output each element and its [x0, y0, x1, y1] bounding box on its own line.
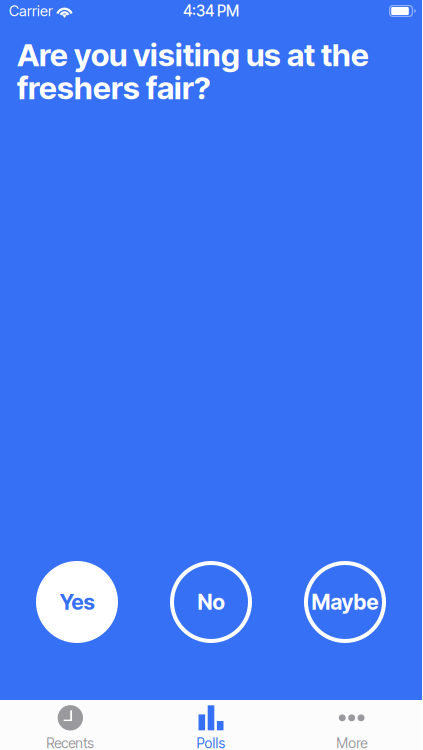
staticText: More — [336, 735, 367, 750]
button[interactable]: Maybe — [304, 561, 386, 643]
staticText: Recents — [46, 735, 94, 750]
staticText: No — [197, 589, 224, 615]
button[interactable]: Yes — [36, 561, 118, 643]
button[interactable]: Recents — [0, 700, 141, 750]
staticText: Carrier — [9, 2, 53, 20]
staticText: 4:34 PM — [183, 2, 239, 20]
staticText: Yes — [59, 589, 94, 615]
staticText: Polls — [196, 735, 225, 750]
button[interactable]: No — [170, 561, 252, 643]
staticText: Are you visiting us at the freshers fair… — [17, 36, 369, 107]
button[interactable]: Polls — [141, 700, 281, 750]
button[interactable]: More — [281, 700, 422, 750]
staticText: Maybe — [311, 589, 378, 615]
